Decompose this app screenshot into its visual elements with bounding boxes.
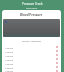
- staticText: 120/80: [5, 69, 14, 72]
- button[interactable]: 120/80: [2, 53, 61, 57]
- staticText: 120/80: [5, 54, 14, 57]
- staticText: Blood Pressure: [20, 13, 43, 17]
- staticText: 120/80: [5, 66, 14, 69]
- staticText: 120/80: [5, 46, 14, 49]
- button[interactable]: 120/80: [2, 57, 61, 61]
- button[interactable]: 120/80: [2, 49, 61, 53]
- button[interactable]: 120/80: [2, 69, 61, 72]
- staticText: 120/80: [5, 62, 14, 65]
- staticText: Recent readings: [22, 39, 41, 42]
- staticText: Mar 2024: [26, 6, 38, 9]
- button[interactable]: 120/80: [2, 45, 61, 49]
- staticText: 120/80: [5, 50, 14, 53]
- button[interactable]: 120/80: [2, 65, 61, 69]
- button[interactable]: 120/80: [2, 61, 61, 65]
- staticText: 120/80: [5, 58, 14, 61]
- staticText: Pressure Track: [22, 2, 43, 6]
